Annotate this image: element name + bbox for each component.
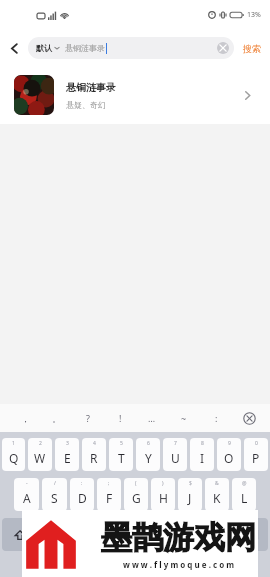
button[interactable]: @ [232, 478, 256, 511]
staticText: " [190, 520, 193, 527]
button[interactable]: - [14, 478, 39, 511]
button[interactable]: 。 [41, 404, 72, 432]
button[interactable]: ~ [168, 404, 200, 432]
staticText: 悬铜涟事录 [65, 43, 105, 53]
staticText: 。 [52, 413, 61, 424]
button[interactable]: ? [72, 404, 104, 432]
button[interactable]: 7 [163, 438, 187, 471]
button[interactable]: Shift [2, 518, 38, 551]
button[interactable]: Open detail [238, 86, 256, 104]
button[interactable]: 0 [244, 438, 268, 471]
button[interactable]: _ [206, 518, 230, 551]
button[interactable]: ! [104, 404, 136, 432]
staticText: O [224, 450, 234, 466]
button[interactable]: 4 [82, 438, 106, 471]
staticText: Y [145, 450, 152, 466]
staticText: ) [162, 480, 164, 487]
staticText: 悬铜涟事录 [66, 81, 116, 94]
button[interactable]: ? [97, 518, 122, 551]
staticText: 13% [247, 10, 261, 20]
button[interactable]: Close keyboard [238, 407, 260, 429]
staticText: 8 [201, 440, 204, 447]
button[interactable]: : [70, 478, 94, 511]
staticText: H [159, 490, 168, 506]
button[interactable]: Back [0, 30, 28, 66]
staticText: : [215, 412, 218, 424]
staticText: G [132, 490, 141, 506]
staticText: 悬疑、奇幻 [66, 100, 106, 110]
staticText: K [213, 490, 221, 506]
button[interactable]: $ [178, 478, 202, 511]
button[interactable]: ! [125, 518, 149, 551]
button[interactable]: " [179, 518, 203, 551]
button[interactable]: 默认 [28, 37, 234, 59]
staticText: M [213, 530, 224, 546]
staticText: 0 [255, 440, 258, 447]
button[interactable]: 搜索 [234, 30, 270, 66]
button[interactable]: ; [97, 478, 121, 511]
staticText: ? [86, 412, 90, 424]
staticText: 1 [12, 440, 15, 447]
button[interactable]: ' [152, 518, 176, 551]
staticText: L [241, 490, 248, 506]
staticText: ! [119, 412, 122, 424]
staticText: _ [217, 520, 220, 527]
staticText: ( [135, 480, 137, 487]
staticText: ? [108, 520, 111, 527]
staticText: E [64, 450, 71, 466]
button[interactable]: 2 [28, 438, 52, 471]
button[interactable]: . [41, 518, 66, 551]
staticText: C [106, 530, 114, 546]
staticText: T [118, 450, 125, 466]
button[interactable]: … [136, 404, 168, 432]
button[interactable]: 6 [136, 438, 160, 471]
staticText: - [26, 480, 28, 487]
staticText: ; [108, 480, 110, 487]
staticText: 3 [66, 440, 69, 447]
button[interactable]: 3 [55, 438, 79, 471]
staticText: A [23, 490, 31, 506]
staticText: 2 [39, 440, 42, 447]
staticText: W [34, 450, 46, 466]
staticText: 9 [228, 440, 231, 447]
staticText: B [160, 530, 168, 546]
button[interactable]: 9 [217, 438, 241, 471]
staticText: S [51, 490, 58, 506]
button[interactable]: : [200, 404, 232, 432]
button[interactable]: / [42, 478, 67, 511]
button[interactable]: Clear text [216, 41, 230, 55]
staticText: . [53, 520, 55, 527]
staticText: F [106, 490, 113, 506]
staticText: 墨鹊游戏网 [101, 518, 256, 557]
staticText: : [81, 480, 83, 487]
staticText: ! [136, 520, 138, 527]
button[interactable]: ( [124, 478, 148, 511]
staticText: 默认 [36, 43, 52, 53]
button[interactable]: Delete [233, 518, 268, 551]
button[interactable]: 5 [109, 438, 133, 471]
staticText: Q [9, 450, 19, 466]
staticText: & [215, 480, 219, 487]
staticText: J [188, 490, 192, 506]
staticText: w w w . f l y m o q u e . c o m [123, 559, 235, 570]
button[interactable]: 8 [190, 438, 214, 471]
button[interactable]: & [205, 478, 229, 511]
button[interactable]: ， [10, 404, 41, 432]
staticText: V [133, 530, 141, 546]
button[interactable]: , [69, 518, 94, 551]
staticText: P [252, 450, 260, 466]
button[interactable]: 1 [2, 438, 25, 471]
staticText: ' [163, 520, 165, 527]
button[interactable]: ) [151, 478, 175, 511]
staticText: U [171, 450, 180, 466]
staticText: $ [189, 480, 192, 487]
staticText: R [90, 450, 98, 466]
staticText: N [186, 530, 196, 546]
button[interactable]: 悬铜涟事录 [0, 66, 270, 124]
staticText: 4 [93, 440, 96, 447]
staticText: 6 [147, 440, 150, 447]
staticText: ， [21, 413, 30, 424]
staticText: 搜索 [243, 43, 261, 54]
staticText: ~ [181, 412, 187, 424]
